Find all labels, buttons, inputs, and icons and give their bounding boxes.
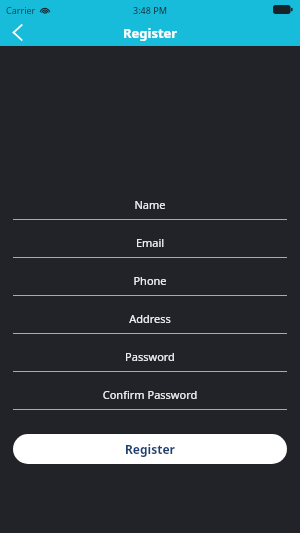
- staticText: Password: [13, 349, 287, 364]
- button[interactable]: Email: [0, 220, 300, 258]
- button[interactable]: Address: [0, 296, 300, 334]
- staticText: Carrier: [6, 4, 36, 16]
- staticText: Register: [123, 24, 178, 42]
- staticText: Address: [13, 311, 287, 326]
- button[interactable]: Password: [0, 334, 300, 372]
- staticText: Register: [125, 441, 175, 457]
- button[interactable]: Register: [13, 434, 287, 464]
- staticText: Confirm Password: [13, 387, 287, 402]
- staticText: Name: [13, 197, 287, 212]
- staticText: Phone: [13, 273, 287, 288]
- button[interactable]: Back: [0, 19, 34, 46]
- button[interactable]: Phone: [0, 258, 300, 296]
- staticText: Email: [13, 235, 287, 250]
- button[interactable]: Name: [0, 182, 300, 220]
- staticText: 3:48 PM: [133, 4, 167, 16]
- button[interactable]: Confirm Password: [0, 372, 300, 410]
